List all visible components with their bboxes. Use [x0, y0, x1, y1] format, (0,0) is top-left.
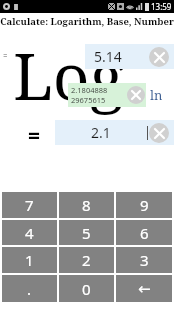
staticText: 2.1: [91, 123, 111, 142]
staticText: 1: [25, 250, 34, 270]
staticText: 3: [140, 250, 149, 270]
button[interactable]: 2: [59, 247, 114, 273]
staticText: 5: [82, 223, 91, 243]
button[interactable]: 5.14: [85, 44, 174, 69]
button[interactable]: 9: [116, 192, 172, 218]
staticText: 5.14: [94, 47, 122, 66]
button[interactable]: ←: [116, 275, 172, 302]
staticText: 7: [25, 195, 34, 215]
button[interactable]: 1: [2, 247, 57, 273]
staticText: =: [3, 50, 8, 61]
staticText: 6: [140, 223, 149, 243]
button[interactable]: 5: [59, 220, 114, 245]
staticText: Calculate: Logarithm, Base, Number: [0, 15, 174, 28]
button[interactable]: Clear field: [149, 47, 169, 67]
button[interactable]: 8: [59, 192, 114, 218]
staticText: 9: [140, 195, 149, 215]
button[interactable]: 0: [59, 275, 114, 302]
staticText: 2: [82, 250, 91, 270]
button[interactable]: .: [2, 275, 57, 302]
button[interactable]: 6: [116, 220, 172, 245]
button[interactable]: Clear field: [149, 123, 169, 143]
button[interactable]: 2.1804888: [68, 83, 146, 107]
staticText: 29675615: [71, 95, 106, 105]
staticText: ln: [150, 86, 163, 104]
staticText: Log: [13, 32, 125, 119]
button[interactable]: 4: [2, 220, 57, 245]
staticText: ←: [138, 280, 151, 297]
staticText: .: [27, 279, 32, 299]
staticText: 4: [25, 223, 34, 243]
staticText: 13:59: [151, 1, 172, 12]
staticText: =: [28, 121, 41, 150]
staticText: 0: [82, 279, 91, 299]
button[interactable]: 2.1: [55, 120, 174, 145]
button[interactable]: Clear field: [127, 86, 145, 104]
button[interactable]: 3: [116, 247, 172, 273]
staticText: 8: [82, 195, 91, 215]
staticText: 2.1804888: [71, 85, 108, 95]
button[interactable]: 7: [2, 192, 57, 218]
